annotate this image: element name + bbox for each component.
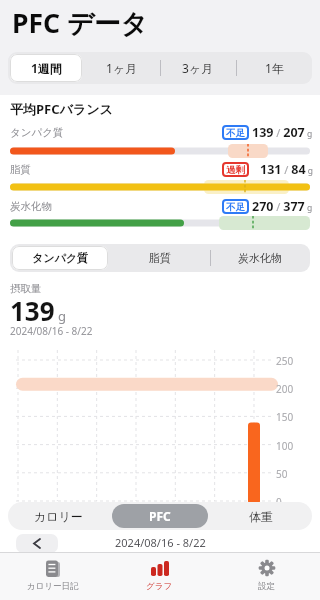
staticText: 50 xyxy=(276,467,288,481)
button[interactable]: 設定 xyxy=(213,552,320,600)
button[interactable]: カロリー日記 xyxy=(0,552,106,600)
staticText: 平均PFCバランス xyxy=(10,100,113,118)
staticText: 不足 xyxy=(226,201,245,213)
staticText: タンパク質 xyxy=(32,251,89,265)
staticText: 3ヶ月 xyxy=(182,60,214,76)
button[interactable]: PFC xyxy=(109,502,210,530)
staticText: 設定 xyxy=(258,581,275,592)
button[interactable]: グラフ xyxy=(106,552,213,600)
staticText: PFC データ xyxy=(12,5,148,41)
staticText: 脂質 xyxy=(149,251,171,265)
button[interactable]: 1週間 xyxy=(8,52,84,84)
staticText: グラフ xyxy=(146,581,173,592)
button[interactable]: 3ヶ月 xyxy=(160,52,236,84)
button[interactable]: 体重 xyxy=(210,502,311,530)
staticText: タンパク質 xyxy=(10,126,64,139)
staticText: 2024/08/16 - 8/22 xyxy=(10,324,93,338)
staticText: 1年 xyxy=(265,60,284,76)
staticText: 0 xyxy=(276,495,282,509)
staticText: 1週間 xyxy=(31,60,62,76)
button[interactable]: 1ヶ月 xyxy=(84,52,160,84)
staticText: 139 / 207 g xyxy=(252,124,313,141)
button[interactable] xyxy=(16,534,58,553)
staticText: 過剰 xyxy=(226,164,245,176)
staticText: 200 xyxy=(276,382,294,396)
button[interactable]: タンパク質 xyxy=(10,244,110,272)
button[interactable]: 炭水化物 xyxy=(210,244,310,272)
staticText: 体重 xyxy=(249,509,273,524)
staticText: 150 xyxy=(276,410,294,424)
staticText: 炭水化物 xyxy=(238,251,282,265)
staticText: 脂質 xyxy=(10,163,31,176)
staticText: 270 / 377 g xyxy=(252,198,313,215)
staticText: 炭水化物 xyxy=(10,200,52,213)
staticText: 2024/08/16 - 8/22 xyxy=(115,535,206,550)
button[interactable]: カロリー xyxy=(8,502,109,530)
staticText: 不足 xyxy=(226,127,245,139)
staticText: 139 g xyxy=(10,293,66,328)
staticText: カロリー xyxy=(34,509,83,524)
staticText: 1ヶ月 xyxy=(106,60,138,76)
staticText: PFC xyxy=(149,508,171,524)
staticText: カロリー日記 xyxy=(27,581,79,592)
button[interactable]: 1年 xyxy=(236,52,312,84)
staticText: 摂取量 xyxy=(10,282,42,295)
staticText: 250 xyxy=(276,354,294,368)
staticText: 131 / 84 g xyxy=(260,161,313,178)
staticText: 100 xyxy=(276,439,294,453)
button[interactable]: 脂質 xyxy=(110,244,210,272)
